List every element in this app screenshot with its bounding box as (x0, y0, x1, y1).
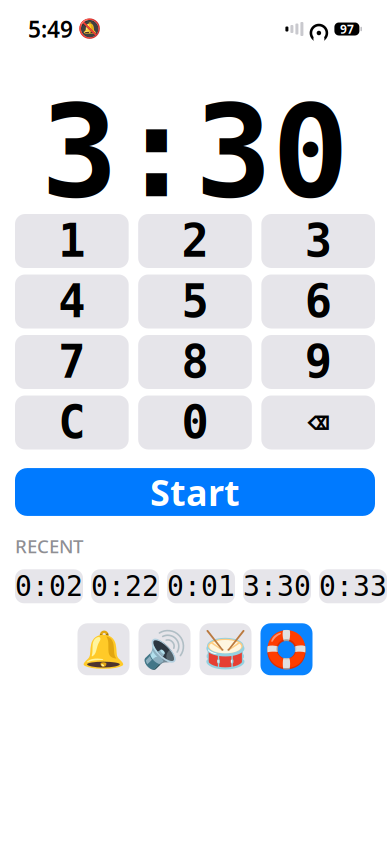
button[interactable]: Life ring (260, 623, 312, 675)
button[interactable]: Bell (77, 623, 129, 675)
staticText: 8 (181, 336, 208, 388)
button[interactable]: 0 (138, 395, 252, 449)
staticText: 0:33 (319, 570, 387, 602)
button[interactable]: Drum (199, 623, 251, 675)
button[interactable]: 3:30 (243, 569, 311, 603)
button[interactable]: Delete (261, 395, 375, 449)
button[interactable]: 1 (15, 214, 129, 268)
staticText: 🔕 (78, 18, 101, 40)
staticText: 0 (181, 397, 208, 448)
staticText: 3:30 (41, 79, 349, 225)
staticText: 4 (58, 276, 85, 327)
button[interactable]: 8 (138, 335, 252, 389)
staticText: 9 (305, 336, 332, 388)
button[interactable]: C (15, 395, 129, 449)
staticText: ⌫ (307, 402, 329, 443)
button[interactable]: 0:01 (167, 569, 235, 603)
button[interactable]: 4 (15, 274, 129, 328)
staticText: 1 (58, 215, 85, 267)
staticText: 6 (305, 276, 332, 327)
button[interactable]: 0:33 (319, 569, 387, 603)
staticText: Start (150, 468, 240, 516)
staticText: 3:30 (243, 570, 311, 602)
button[interactable]: Start (0, 468, 390, 515)
staticText: 2 (181, 215, 208, 267)
staticText: 🔊 (142, 629, 187, 670)
staticText: C (58, 397, 85, 448)
button[interactable]: 2 (138, 214, 252, 268)
button[interactable]: Speaker (138, 623, 190, 675)
button[interactable]: 3 (261, 214, 375, 268)
button[interactable]: 0:02 (15, 569, 83, 603)
staticText: 0:01 (167, 570, 235, 602)
staticText: 🛟 (264, 629, 309, 670)
button[interactable]: 5 (138, 274, 252, 328)
staticText: 7 (58, 336, 85, 388)
staticText: 0:22 (91, 570, 159, 602)
button[interactable]: 7 (15, 335, 129, 389)
staticText: RECENT (15, 533, 83, 558)
staticText: 🥁 (203, 629, 248, 670)
staticText: 5:49 (28, 14, 73, 44)
staticText: 5 (181, 276, 208, 327)
staticText: 0:02 (15, 570, 83, 602)
staticText: 3 (305, 215, 332, 267)
button[interactable]: 6 (261, 274, 375, 328)
button[interactable]: 0:22 (91, 569, 159, 603)
button[interactable]: 9 (261, 335, 375, 389)
staticText: 97 (340, 21, 354, 37)
staticText: 🔔 (81, 629, 126, 670)
